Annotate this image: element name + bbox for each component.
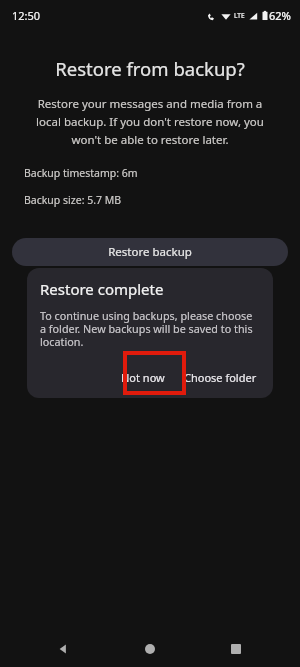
staticText: Restore backup	[108, 244, 192, 260]
button[interactable]: Restore backup	[12, 238, 288, 266]
other: Battery	[262, 10, 268, 21]
other: Wi-Fi	[221, 11, 231, 21]
other: Signal	[248, 11, 258, 21]
staticText: Restore complete	[40, 279, 164, 299]
staticText: To continue using backups, please choose…	[40, 308, 259, 349]
staticText: 12:50	[12, 8, 41, 23]
staticText: Not now	[121, 370, 165, 385]
other: Call	[207, 11, 217, 21]
staticText: Restore your messages and media from a l…	[26, 96, 274, 147]
button[interactable]: Recent apps	[222, 635, 250, 663]
staticText: Restore from backup?	[16, 56, 284, 81]
button[interactable]: Home	[136, 635, 164, 663]
button[interactable]: Back	[49, 635, 77, 663]
staticText: Backup timestamp: 6m	[24, 166, 138, 180]
button[interactable]: Choose folder	[178, 363, 263, 392]
staticText: Backup size: 5.7 MB	[24, 193, 122, 207]
staticText: LTE	[234, 11, 245, 20]
staticText: 62%	[269, 8, 291, 23]
staticText: Choose folder	[184, 370, 257, 385]
button[interactable]: Not now	[112, 363, 174, 392]
